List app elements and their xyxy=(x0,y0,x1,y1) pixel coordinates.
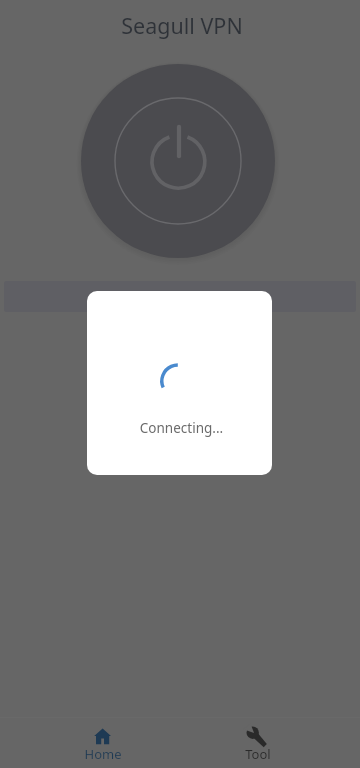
staticText: Home xyxy=(63,745,143,763)
staticText: Seagull VPN xyxy=(2,11,360,40)
button[interactable]: Home xyxy=(0,718,180,768)
button[interactable]: Connect xyxy=(81,64,275,258)
staticText: Tool xyxy=(218,745,298,763)
button[interactable]: Tool xyxy=(180,718,360,768)
staticText: Connecting... xyxy=(89,419,272,437)
